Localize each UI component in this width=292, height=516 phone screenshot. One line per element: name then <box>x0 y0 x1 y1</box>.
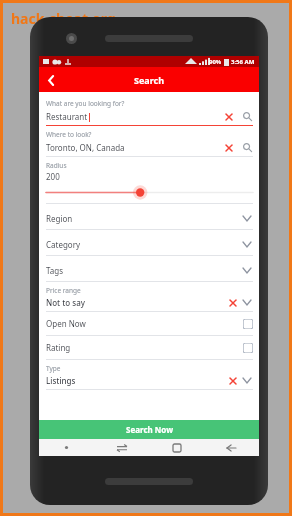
staticText: hack-cheat.org <box>11 9 116 28</box>
button[interactable]: Search Now <box>39 420 259 439</box>
button[interactable]: Back <box>204 439 259 456</box>
staticText: 90% <box>209 58 222 66</box>
button[interactable]: Rating <box>39 336 259 360</box>
button[interactable]: Expand <box>241 296 253 308</box>
button[interactable]: Search <box>241 141 253 153</box>
staticText: Radius <box>46 161 67 170</box>
button[interactable]: Clear <box>227 297 238 308</box>
staticText: Search Now <box>126 424 173 435</box>
staticText: Where to look? <box>46 130 92 139</box>
button[interactable]: Tags <box>39 256 259 282</box>
button[interactable]: Expand <box>241 374 253 386</box>
button[interactable]: What are you looking for? <box>39 95 259 126</box>
staticText: Rating <box>46 342 243 353</box>
button[interactable]: Price range <box>39 282 259 312</box>
staticText: Toronto, ON, Canada <box>46 142 125 153</box>
button[interactable]: Region <box>39 204 259 230</box>
button[interactable]: Type <box>39 360 259 390</box>
staticText: Category <box>46 239 241 250</box>
staticText: 200 <box>46 171 60 182</box>
staticText: Search <box>134 74 165 86</box>
staticText: Restaurant <box>46 111 88 122</box>
button[interactable]: Switch <box>94 439 149 456</box>
staticText: Open Now <box>46 318 243 329</box>
button[interactable]: Search <box>241 110 253 122</box>
staticText: Listings <box>46 375 227 386</box>
button[interactable]: Clear <box>227 375 238 386</box>
staticText: What are you looking for? <box>46 99 125 108</box>
staticText: 3:56 AM <box>231 58 255 66</box>
staticText: Region <box>46 213 241 224</box>
button[interactable]: Back <box>39 68 63 92</box>
staticText: Type <box>46 364 61 373</box>
button[interactable]: Clear <box>223 111 234 122</box>
button[interactable]: Expand <box>241 264 253 276</box>
button[interactable]: Radius slider <box>46 187 253 198</box>
button[interactable]: Where to look? <box>39 126 259 157</box>
staticText: Tags <box>46 265 241 276</box>
button[interactable]: Expand <box>241 238 253 250</box>
button[interactable]: Menu <box>39 439 94 456</box>
button[interactable]: Recents <box>149 439 204 456</box>
staticText: Not to say <box>46 297 227 308</box>
button[interactable]: Category <box>39 230 259 256</box>
staticText: Price range <box>46 286 81 295</box>
button[interactable]: Clear <box>223 142 234 153</box>
button[interactable]: Open Now <box>39 312 259 336</box>
button[interactable]: Expand <box>241 212 253 224</box>
